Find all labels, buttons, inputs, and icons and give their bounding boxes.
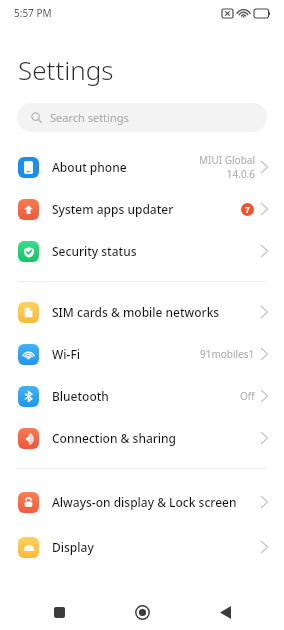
staticText: 91mobiles1 [200, 347, 255, 361]
button[interactable]: Connection & sharing [0, 417, 284, 459]
staticText: System apps updater [52, 201, 174, 217]
button[interactable]: Search settings [17, 103, 267, 132]
staticText: Settings [18, 52, 114, 87]
staticText: Security status [52, 243, 137, 259]
button[interactable]: Wi-Fi [0, 333, 284, 375]
staticText: SIM cards & mobile networks [52, 304, 220, 320]
staticText: 14.0.6 [226, 167, 255, 181]
button[interactable]: Home [118, 594, 166, 630]
staticText: Display [52, 539, 94, 555]
staticText: Wi-Fi [52, 346, 80, 362]
staticText: Search settings [50, 110, 129, 125]
button[interactable]: SIM cards & mobile networks [0, 291, 284, 333]
staticText: Off [240, 389, 255, 403]
button[interactable]: Recent apps [35, 594, 83, 630]
staticText: MIUI Global [198, 153, 255, 167]
button[interactable]: Bluetooth [0, 375, 284, 417]
staticText: Always-on display & Lock screen [52, 494, 237, 510]
button[interactable]: System apps updater [0, 188, 284, 230]
button[interactable]: Display [0, 526, 284, 568]
button[interactable]: Security status [0, 230, 284, 272]
staticText: 7 [245, 204, 250, 215]
staticText: 5:57 PM [14, 6, 52, 20]
button[interactable]: About phone [0, 146, 284, 188]
button[interactable]: Back [201, 594, 249, 630]
staticText: Connection & sharing [52, 430, 177, 446]
staticText: About phone [52, 159, 127, 175]
button[interactable]: Always-on display & Lock screen [0, 478, 284, 526]
staticText: Bluetooth [52, 388, 109, 404]
